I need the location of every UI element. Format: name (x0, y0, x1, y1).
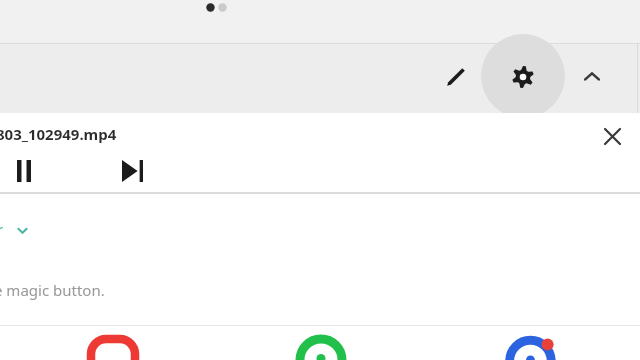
button[interactable]: Collapse (568, 53, 616, 101)
button[interactable]: Edit (432, 53, 480, 101)
staticText: e magic button. (0, 280, 105, 300)
button[interactable]: Filter dropdown (0, 218, 38, 242)
button[interactable]: Pause (2, 149, 46, 193)
button[interactable]: Settings (499, 53, 547, 101)
staticText: 803_102949.mp4 (0, 124, 117, 144)
button[interactable]: Next (110, 149, 154, 193)
staticText: er (0, 220, 3, 238)
button[interactable]: Video app (88, 336, 138, 360)
button[interactable]: Close (590, 114, 634, 158)
button[interactable]: Blue app with notification (506, 334, 558, 360)
button[interactable]: Page indicator (205, 1, 235, 15)
button[interactable]: Green app (296, 335, 346, 360)
